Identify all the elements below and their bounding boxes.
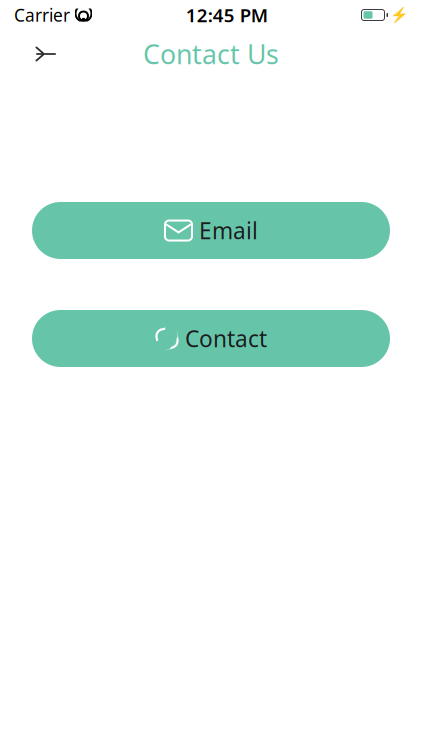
button[interactable]: Email [32,202,390,259]
button[interactable]: Contact [32,310,390,367]
staticText: Contact Us [143,36,279,72]
staticText: Carrier [14,3,70,26]
staticText: ⚡ [390,7,408,23]
staticText: Email [199,215,258,245]
staticText: Contact [185,323,267,353]
button[interactable]: Back [24,34,68,74]
staticText: 12:45 PM [186,3,268,27]
